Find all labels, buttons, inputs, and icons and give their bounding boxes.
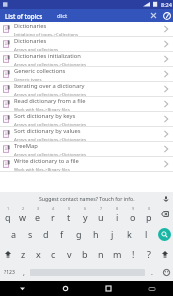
staticText: u	[98, 211, 104, 223]
button[interactable]: Dictionaries	[0, 37, 173, 52]
button[interactable]: Voice input	[161, 194, 170, 203]
button[interactable]: !	[125, 244, 141, 264]
staticText: ?	[147, 248, 151, 260]
button[interactable]: 5	[61, 204, 77, 224]
button[interactable]: 1	[0, 204, 15, 224]
staticText: Iterating over a dictionary	[14, 82, 85, 90]
button[interactable]: v	[61, 244, 77, 264]
button[interactable]: Search	[158, 228, 171, 241]
button[interactable]: ,	[18, 264, 30, 281]
button[interactable]: Dictionaries	[0, 22, 173, 37]
button[interactable]: a	[6, 224, 22, 244]
button[interactable]: c	[46, 244, 61, 264]
button[interactable]: d	[38, 224, 54, 244]
staticText: p	[146, 211, 152, 223]
staticText: ?123	[4, 269, 15, 276]
button[interactable]: b	[77, 244, 93, 264]
button[interactable]: k	[121, 224, 138, 244]
button[interactable]: Home	[61, 284, 70, 293]
button[interactable]: Shift	[0, 244, 16, 264]
button[interactable]: l	[138, 224, 155, 244]
button[interactable]: Sort dictionary by values	[0, 127, 173, 142]
staticText: e	[35, 211, 41, 223]
button[interactable]: z	[16, 244, 31, 264]
staticText: .	[151, 268, 153, 278]
staticText: w	[19, 211, 27, 223]
staticText: Arrays and collections->Dictionaries	[14, 136, 86, 141]
staticText: Read dictionary from a file	[14, 97, 86, 105]
button[interactable]: Emoji	[159, 264, 173, 281]
staticText: 8	[116, 206, 119, 211]
staticText: q	[5, 211, 11, 223]
button[interactable]: .	[145, 264, 159, 281]
staticText: 2	[22, 206, 25, 211]
staticText: y	[83, 211, 88, 223]
button[interactable]: Suggest contact names? Touch for info.	[39, 195, 135, 202]
button[interactable]: 4	[45, 204, 61, 224]
button[interactable]: Write dictionary to a file	[0, 157, 173, 172]
staticText: TreeMap	[14, 142, 38, 150]
button[interactable]: g	[70, 224, 87, 244]
staticText: Generic collections	[14, 67, 66, 75]
staticText: Arrays and collections	[14, 46, 59, 51]
button[interactable]: h	[87, 224, 104, 244]
staticText: Dictionaries	[14, 22, 47, 30]
button[interactable]: Generic collections	[0, 67, 173, 82]
staticText: n	[98, 248, 104, 260]
staticText: Arrays and collections->Dictionaries	[14, 121, 86, 126]
button[interactable]: Dictionaries initialization	[0, 52, 173, 67]
staticText: h	[93, 228, 99, 240]
staticText: m	[113, 248, 122, 260]
button[interactable]: Switch keyboard	[147, 284, 156, 293]
button[interactable]: TreeMap	[0, 142, 173, 157]
staticText: Write dictionary to a file	[14, 157, 79, 165]
staticText: f	[60, 228, 64, 240]
button[interactable]: n	[93, 244, 109, 264]
staticText: Initializing of types->Collections	[14, 31, 78, 36]
button[interactable]: 2	[15, 204, 30, 224]
staticText: 9	[132, 206, 135, 211]
staticText: a	[11, 228, 17, 240]
staticText: 1	[7, 206, 10, 211]
button[interactable]: x	[31, 244, 46, 264]
button[interactable]: 0	[141, 204, 157, 224]
staticText: 5	[68, 206, 71, 211]
button[interactable]: 7	[93, 204, 109, 224]
button[interactable]: Iterating over a dictionary	[0, 82, 173, 97]
staticText: 0	[148, 206, 151, 211]
button[interactable]: 3	[30, 204, 45, 224]
button[interactable]: Read dictionary from a file	[0, 97, 173, 112]
button[interactable]: s	[22, 224, 38, 244]
button[interactable]: 9	[125, 204, 141, 224]
staticText: b	[82, 248, 88, 260]
staticText: z	[21, 248, 26, 260]
button[interactable]: Hide keyboard	[18, 284, 27, 293]
button[interactable]: Shift	[157, 244, 173, 264]
staticText: Sort dictionary by values	[14, 127, 81, 135]
button[interactable]: ?	[141, 244, 157, 264]
button[interactable]: Sort dictionary by keys	[0, 112, 173, 127]
staticText: 6	[84, 206, 87, 211]
button[interactable]: m	[109, 244, 125, 264]
button[interactable]: 6	[77, 204, 93, 224]
button[interactable]: Recent apps	[104, 284, 113, 293]
staticText: Sort dictionary by keys	[14, 112, 76, 120]
staticText: j	[111, 228, 114, 240]
button[interactable]: Clear search	[147, 9, 160, 22]
staticText: dict	[57, 12, 68, 20]
button[interactable]: Info	[160, 9, 173, 22]
staticText: Arrays and collections->Dictionaries	[14, 151, 86, 156]
button[interactable]: f	[54, 224, 70, 244]
button[interactable]: j	[104, 224, 121, 244]
staticText: r	[51, 211, 55, 223]
staticText: Work with files->Binary files	[14, 106, 70, 111]
staticText: k	[127, 228, 132, 240]
button[interactable]: 8	[109, 204, 125, 224]
staticText: v	[67, 248, 72, 260]
button[interactable]: Backspace	[157, 204, 173, 224]
staticText: Dictionaries initialization	[14, 52, 81, 60]
staticText: List of topics	[5, 12, 43, 20]
staticText: t	[67, 211, 71, 223]
button[interactable]: ?123	[0, 264, 18, 281]
